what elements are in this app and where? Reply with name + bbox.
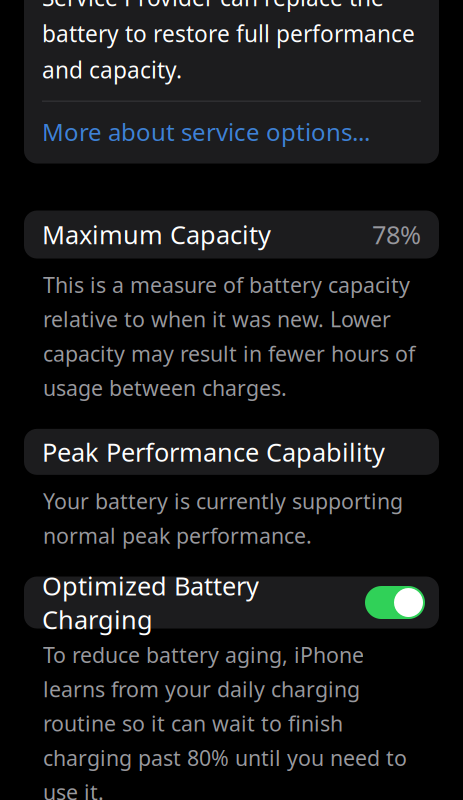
button[interactable]: More about service options... [42, 102, 421, 150]
button[interactable]: Peak Performance Capability [0, 429, 463, 475]
staticText: Your battery is currently supporting nor… [43, 487, 403, 550]
staticText: Maximum Capacity [42, 218, 271, 251]
staticText: Peak Performance Capability [42, 435, 385, 469]
staticText: This is a measure of battery capacity re… [43, 270, 415, 402]
staticText: More about service options... [42, 116, 370, 148]
staticText: Optimized Battery Charging [42, 569, 259, 636]
button[interactable]: Maximum Capacity [0, 210, 463, 258]
button[interactable]: Optimized Battery Charging [0, 576, 463, 628]
staticText: 78% [372, 218, 421, 251]
staticText: Your battery's health is significantly d… [42, 0, 421, 85]
staticText: To reduce battery aging, iPhone learns f… [43, 640, 407, 800]
